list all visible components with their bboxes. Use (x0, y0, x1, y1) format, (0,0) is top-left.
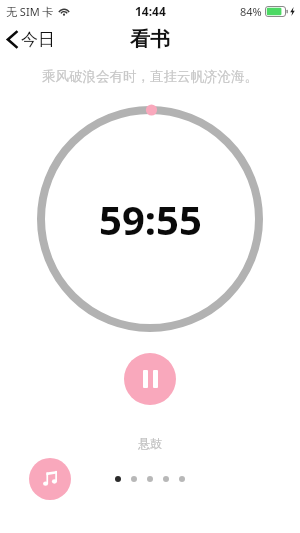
button[interactable]: 今日 (0, 25, 65, 54)
button[interactable]: Page 2 (131, 476, 137, 482)
button[interactable]: Page 4 (163, 476, 169, 482)
button[interactable]: Page 5 (179, 476, 185, 482)
staticText: 看书 (130, 27, 170, 52)
staticText: 59:55 (99, 192, 202, 246)
staticText: 今日 (21, 29, 55, 50)
staticText: 悬鼓 (138, 436, 162, 451)
staticText: 84% (240, 4, 262, 19)
staticText: 无 SIM 卡 (6, 4, 54, 19)
button[interactable]: Music (29, 458, 71, 500)
staticText: 14:44 (135, 3, 166, 19)
button[interactable]: Page 3 (147, 476, 153, 482)
button[interactable]: Pause (124, 353, 176, 405)
button[interactable]: Page 1 (115, 476, 121, 482)
staticText: 乘风破浪会有时，直挂云帆济沧海。 (34, 68, 266, 85)
